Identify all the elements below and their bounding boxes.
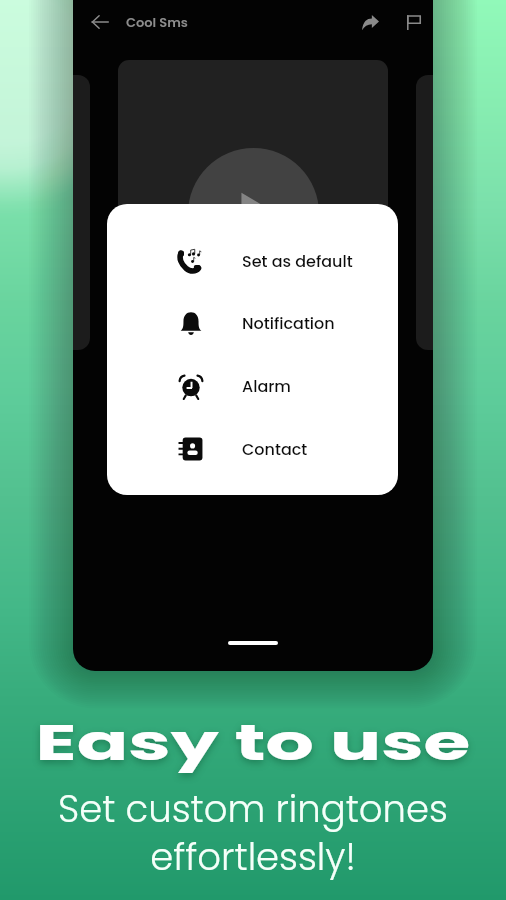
staticText: Easy to use: [0, 709, 506, 778]
staticText: Set as default: [242, 250, 353, 272]
button[interactable]: Share: [355, 7, 385, 37]
staticText: Set custom ringtones effortlessly!: [0, 783, 506, 883]
staticText: Cool Sms: [126, 13, 188, 31]
button[interactable]: Set as default: [107, 236, 398, 286]
staticText: Contact: [242, 438, 308, 460]
button[interactable]: Alarm: [107, 361, 398, 411]
button[interactable]: Report: [398, 7, 428, 37]
button[interactable]: Contact: [107, 424, 398, 474]
button[interactable]: Notification: [107, 298, 398, 348]
staticText: Notification: [242, 312, 335, 334]
button[interactable]: Play: [188, 148, 319, 279]
button[interactable]: Back: [86, 8, 114, 36]
staticText: Alarm: [242, 375, 291, 397]
